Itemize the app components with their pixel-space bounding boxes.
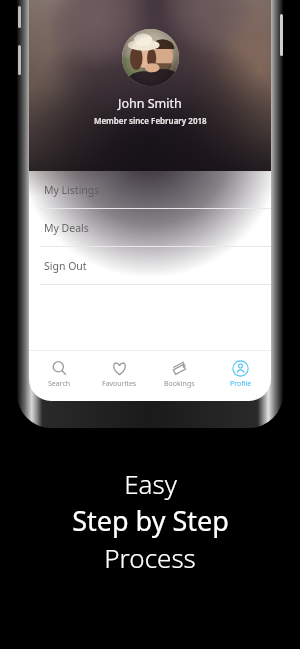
staticText: Easy [124,466,177,501]
staticText: My Deals [44,221,89,235]
staticText: Step by Step [72,502,229,539]
staticText: Member since February 2018 [94,115,207,126]
button[interactable]: Bookings [149,360,210,389]
button[interactable]: Search [29,360,89,389]
staticText: John Smith [118,95,182,112]
staticText: Sign Out [44,259,87,273]
staticText: Search [48,379,71,389]
button[interactable]: My Listings [29,171,271,208]
button[interactable]: Favourites [89,360,149,389]
staticText: Process [104,540,196,575]
button[interactable]: My Deals [29,209,271,246]
staticText: Bookings [164,379,195,389]
button[interactable]: Profile [210,360,271,389]
staticText: My Listings [44,183,100,197]
staticText: Favourites [102,379,137,389]
button[interactable]: Sign Out [29,247,271,284]
staticText: Profile [230,379,252,389]
